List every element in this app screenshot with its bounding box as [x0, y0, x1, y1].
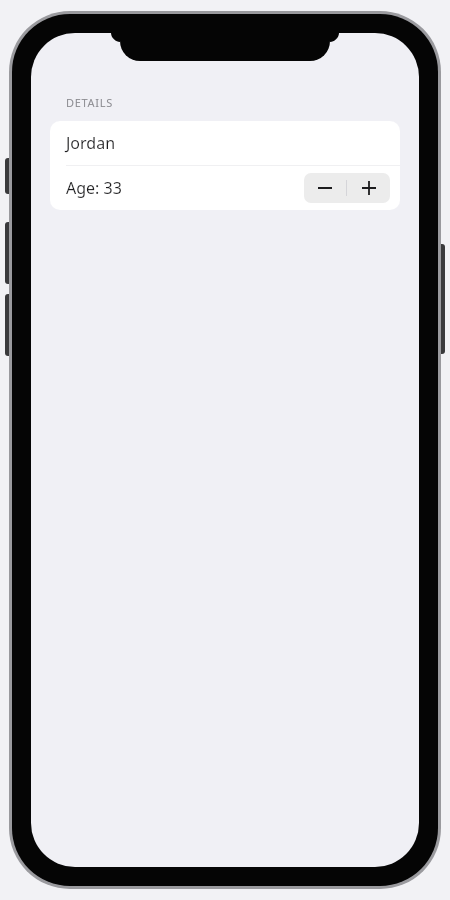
button[interactable]: Decrease age: [304, 173, 346, 203]
button[interactable]: Increase age: [347, 173, 390, 203]
staticText: DETAILS: [66, 95, 113, 110]
button[interactable]: Jordan: [50, 121, 400, 165]
staticText: Age: 33: [66, 177, 122, 199]
staticText: Jordan: [66, 132, 116, 154]
